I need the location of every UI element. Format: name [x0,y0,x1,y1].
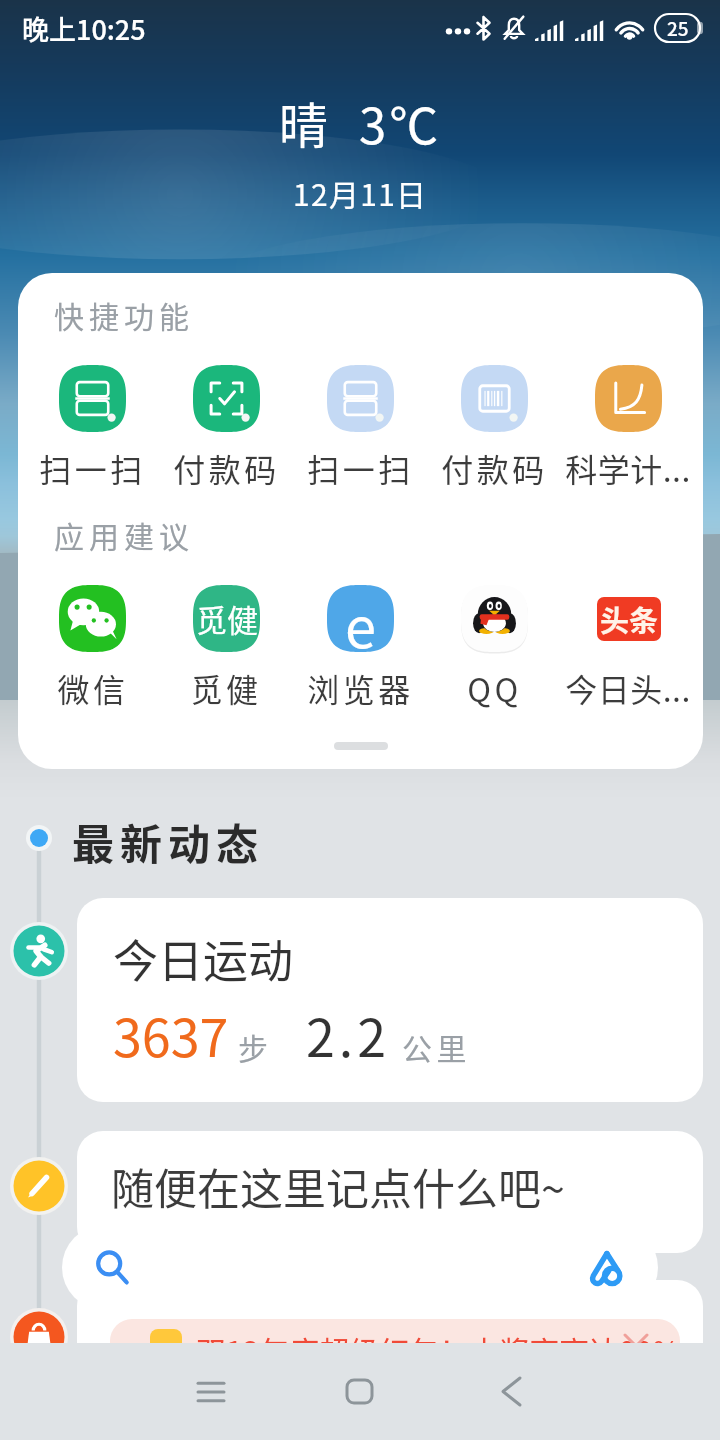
staticText: 晚上10:25 [22,9,146,48]
staticText: 随便在这里记点什么吧~ [111,1155,565,1217]
button[interactable]: e [293,585,427,711]
staticText: 快捷功能 [54,293,194,336]
button[interactable]: 随便在这里记点什么吧~ [77,1131,703,1253]
staticText: 应用建议 [54,513,194,556]
button[interactable]: Home [309,1343,409,1440]
other: Voice assistant [584,1246,628,1290]
staticText: 今日运动 [113,926,294,991]
staticText: 公里 [402,1025,471,1068]
staticText: 觅健 [190,665,262,711]
button[interactable]: 付款码 [159,365,293,491]
staticText: 扫一扫 [307,445,414,491]
button[interactable]: 微信 [26,585,159,711]
staticText: 双12年度超级红包！中奖率高达99% [196,1328,680,1350]
button[interactable]: Recent apps [161,1343,261,1440]
staticText: 最新动态 [72,811,265,872]
button[interactable]: 觅健 [159,585,293,711]
button[interactable]: 扫一扫 [26,365,159,491]
staticText: 扫一扫 [39,445,146,491]
staticText: 步 [238,1025,268,1068]
button[interactable]: 扫一扫 [293,365,427,491]
button[interactable]: 科学计... [561,365,695,491]
button[interactable]: QQ [427,585,561,711]
staticText: 微信 [57,665,129,711]
button[interactable]: Search [62,1225,658,1310]
button[interactable]: 付款码 [427,365,561,491]
staticText: 晴 3℃ [279,87,442,158]
staticText: QQ [467,665,522,711]
staticText: 12月11日 [293,171,428,214]
button[interactable]: 今日运动 [77,898,703,1102]
staticText: 付款码 [441,445,548,491]
button[interactable]: 头条 [561,585,695,711]
staticText: 浏览器 [307,665,414,711]
staticText: 25 [667,14,689,42]
staticText: 今日头... [565,665,691,711]
other: Search [94,1249,132,1287]
staticText: 3637 [113,997,229,1072]
button[interactable]: Back [461,1343,561,1440]
staticText: 2.2 [306,997,391,1072]
staticText: 科学计... [565,445,691,491]
staticText: 觅健 [196,596,258,641]
staticText: e [345,585,377,650]
button[interactable]: 双12年度超级红包！中奖率高达99% [77,1280,703,1350]
staticText: 付款码 [173,445,280,491]
staticText: 头条 [600,598,659,640]
